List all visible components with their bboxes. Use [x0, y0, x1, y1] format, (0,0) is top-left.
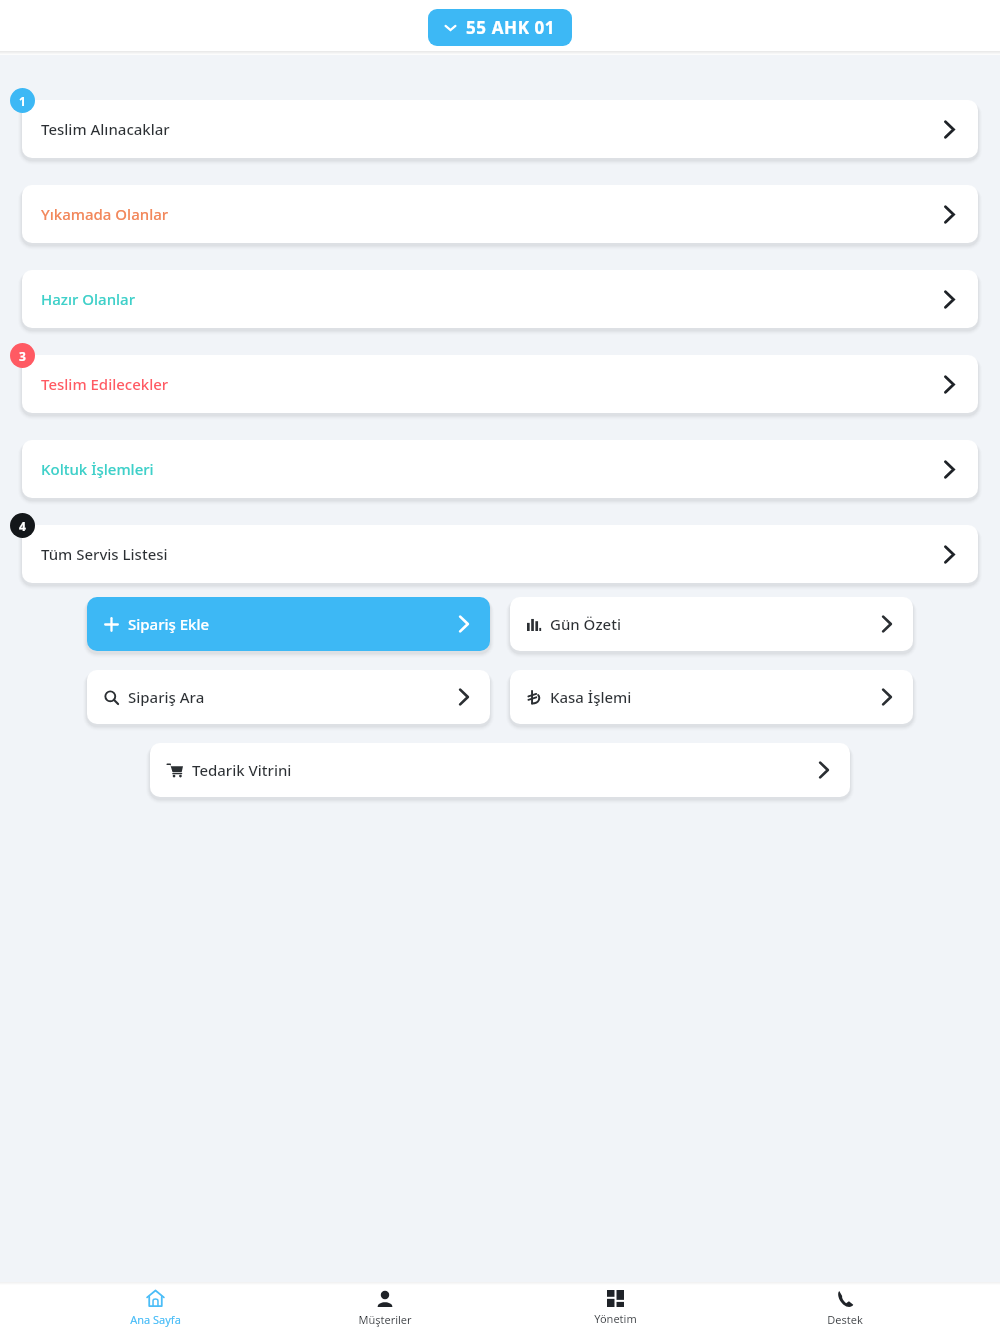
- button[interactable]: Destek: [770, 1282, 920, 1334]
- staticText: Gün Özeti: [550, 614, 878, 634]
- button[interactable]: Teslim Alınacaklar: [22, 100, 978, 158]
- staticText: Teslim Alınacaklar: [41, 119, 940, 139]
- button[interactable]: 55 AHK 01: [428, 9, 572, 46]
- button[interactable]: Kasa İşlemi: [510, 670, 913, 724]
- staticText: 55 AHK 01: [466, 16, 556, 39]
- staticText: Kasa İşlemi: [550, 687, 878, 707]
- staticText: 1: [19, 93, 26, 109]
- button[interactable]: Sipariş Ara: [87, 670, 490, 724]
- staticText: Ana Sayfa: [130, 1312, 181, 1327]
- staticText: Yıkamada Olanlar: [41, 204, 940, 224]
- staticText: Hazır Olanlar: [41, 289, 940, 309]
- staticText: Sipariş Ekle: [128, 614, 455, 634]
- staticText: Müşteriler: [358, 1312, 412, 1327]
- staticText: 3: [19, 348, 26, 364]
- button[interactable]: Müşteriler: [310, 1282, 460, 1334]
- button[interactable]: Tedarik Vitrini: [150, 743, 850, 797]
- staticText: Tedarik Vitrini: [192, 760, 815, 780]
- button[interactable]: Ana Sayfa: [80, 1282, 230, 1334]
- staticText: Tüm Servis Listesi: [41, 544, 940, 564]
- button[interactable]: Sipariş Ekle: [87, 597, 490, 651]
- staticText: Yönetim: [594, 1311, 637, 1326]
- button[interactable]: Hazır Olanlar: [22, 270, 978, 328]
- button[interactable]: Koltuk İşlemleri: [22, 440, 978, 498]
- button[interactable]: Gün Özeti: [510, 597, 913, 651]
- staticText: Destek: [827, 1312, 863, 1327]
- staticText: Koltuk İşlemleri: [41, 459, 940, 479]
- staticText: Teslim Edilecekler: [41, 374, 940, 394]
- staticText: 4: [19, 518, 26, 534]
- button[interactable]: Teslim Edilecekler: [22, 355, 978, 413]
- staticText: Sipariş Ara: [128, 687, 455, 707]
- button[interactable]: Tüm Servis Listesi: [22, 525, 978, 583]
- button[interactable]: Yönetim: [540, 1282, 690, 1334]
- button[interactable]: Yıkamada Olanlar: [22, 185, 978, 243]
